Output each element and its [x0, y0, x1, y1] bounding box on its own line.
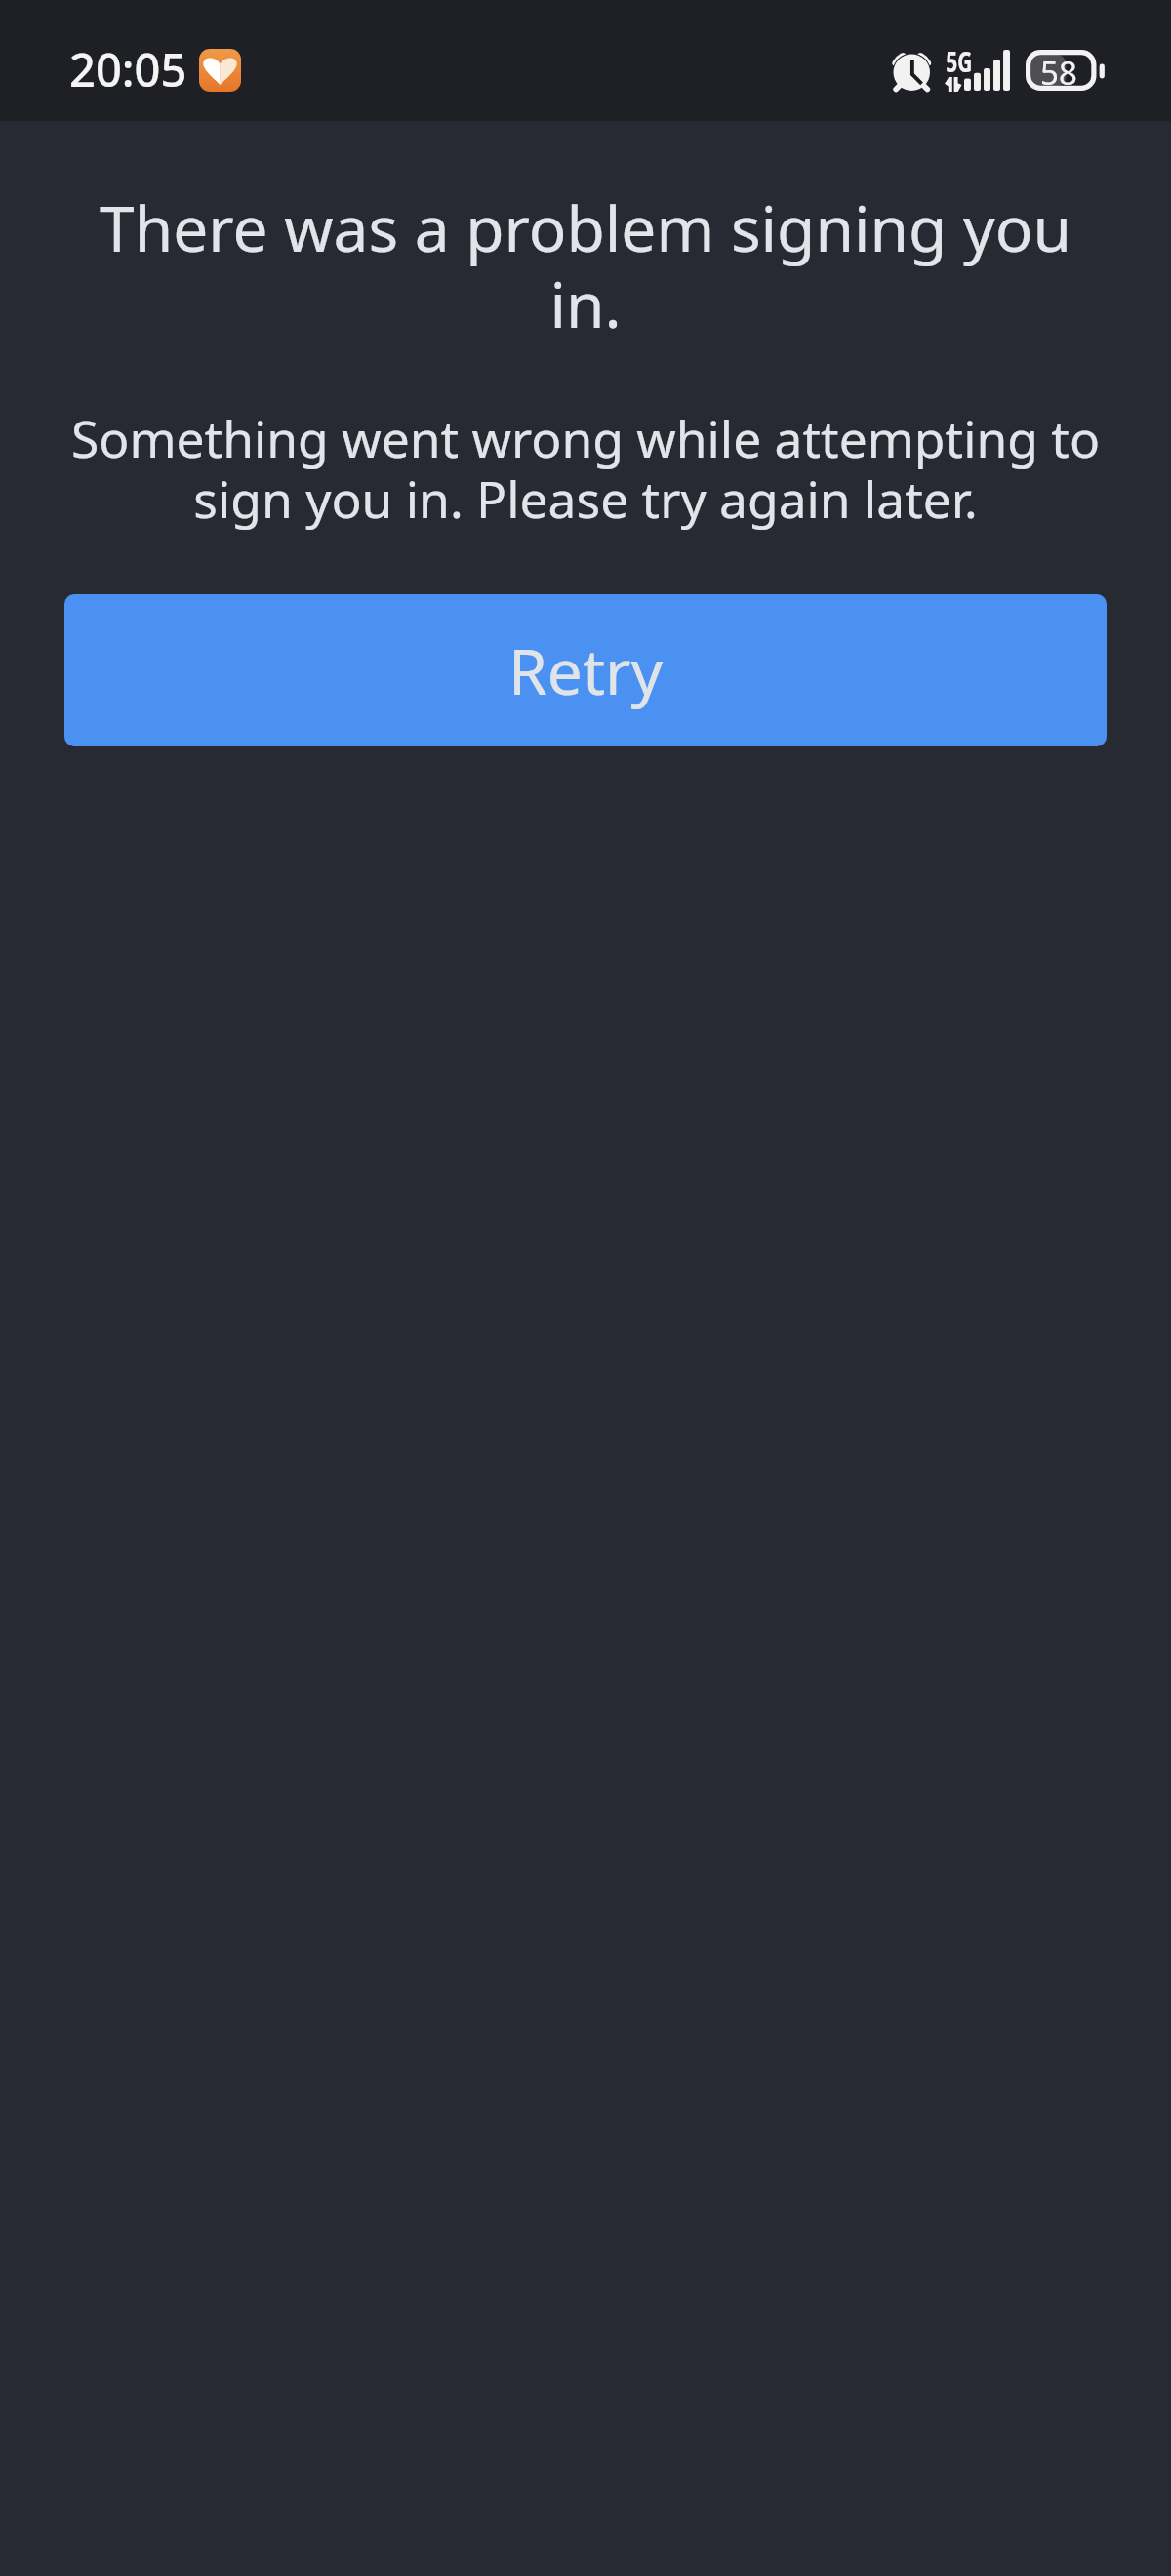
staticText: 20:05 [69, 38, 187, 101]
button[interactable]: Retry [64, 594, 1107, 746]
staticText: Retry [508, 628, 664, 713]
staticText: Something went wrong while attempting to… [39, 404, 1132, 533]
staticText: 5G [946, 42, 973, 80]
other: Alarm [891, 52, 932, 92]
other: Signal strength [964, 50, 1010, 91]
staticText: There was a problem signing you in. [73, 185, 1098, 346]
staticText: 58 [1040, 51, 1077, 92]
other: 5G network [945, 50, 988, 91]
other: Battery 58 percent [1026, 50, 1106, 91]
